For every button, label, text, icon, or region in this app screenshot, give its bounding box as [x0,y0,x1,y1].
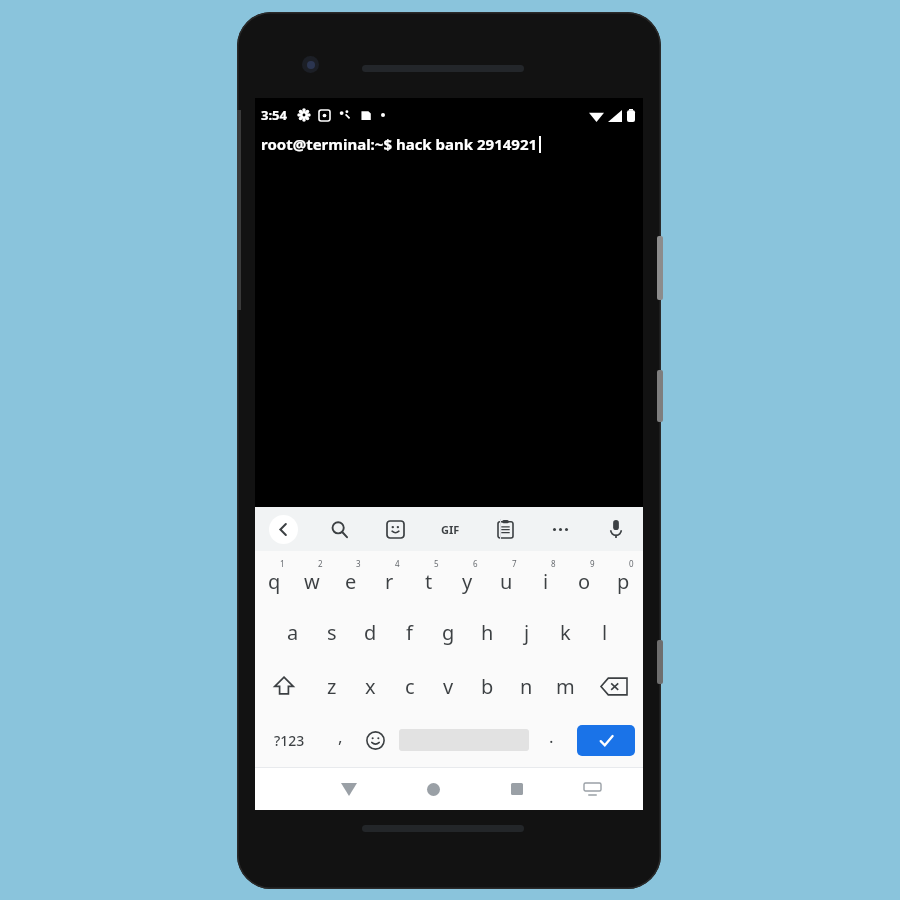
button[interactable]: 7 [487,551,526,605]
staticText: t [425,568,433,595]
staticText: 8 [551,558,556,569]
staticText: w [304,568,320,595]
button[interactable]: More options [533,507,588,551]
staticText: u [500,568,513,595]
button[interactable]: 5 [409,551,448,605]
staticText: h [481,619,494,646]
staticText: 6 [473,558,478,569]
staticText: , [338,725,343,748]
button[interactable]: h [468,605,507,659]
staticText: 0 [629,558,634,569]
button[interactable]: v [429,659,468,713]
staticText: ?123 [274,731,305,750]
button[interactable]: b [468,659,507,713]
staticText: b [481,673,494,700]
staticText: x [365,673,376,700]
button[interactable]: k [546,605,585,659]
button[interactable]: x [351,659,390,713]
staticText: 4 [395,558,400,569]
staticText: k [560,619,571,646]
button[interactable]: n [507,659,546,713]
staticText: 7 [512,558,517,569]
button[interactable]: Voice input [588,507,643,551]
button[interactable]: 4 [370,551,409,605]
staticText: j [524,619,530,646]
button[interactable]: d [351,605,390,659]
staticText: a [287,619,299,646]
staticText: c [405,673,415,700]
staticText: l [602,619,608,646]
button[interactable]: . [534,713,569,767]
button[interactable]: 1 [255,551,293,605]
staticText: m [556,673,575,700]
button[interactable]: Back [255,507,311,551]
button[interactable]: j [507,605,546,659]
button[interactable]: c [390,659,429,713]
button[interactable]: Enter [569,713,643,767]
button[interactable]: Emoji [358,713,393,767]
staticText: s [327,619,337,646]
button[interactable]: a [273,605,312,659]
button[interactable]: Back [307,768,391,810]
staticText: d [364,619,377,646]
button[interactable]: Backspace [585,659,643,713]
button[interactable]: Stickers [367,507,423,551]
button[interactable]: Search [311,507,367,551]
staticText: 3 [356,558,361,569]
staticText: z [327,673,337,700]
button[interactable]: f [390,605,429,659]
staticText: f [406,619,413,646]
button[interactable] [393,713,534,767]
button[interactable]: s [312,605,351,659]
button[interactable]: ?123 [255,713,323,767]
button[interactable]: l [585,605,624,659]
button[interactable]: Home [391,768,475,810]
staticText: g [442,619,455,646]
staticText: . [549,725,554,748]
button[interactable]: 2 [293,551,331,605]
staticText: 9 [590,558,595,569]
button[interactable]: Shift [255,659,312,713]
button[interactable]: Clipboard [478,507,533,551]
staticText: i [543,568,549,595]
staticText: o [578,568,591,595]
staticText: GIF [441,522,460,537]
staticText: e [345,568,357,595]
button[interactable]: z [312,659,351,713]
staticText: p [617,568,630,595]
button[interactable]: 8 [526,551,565,605]
staticText: 3:54 [261,106,287,124]
button[interactable]: 0 [604,551,643,605]
staticText: 1 [280,558,285,569]
staticText: 5 [434,558,439,569]
button[interactable]: m [546,659,585,713]
staticText: root@terminal:~$ hack bank 2914921 [261,134,538,154]
staticText: q [268,568,281,595]
button[interactable]: 9 [565,551,604,605]
staticText: 2 [318,558,323,569]
button[interactable]: g [429,605,468,659]
button[interactable]: 3 [331,551,370,605]
staticText: n [520,673,533,700]
button[interactable]: , [323,713,358,767]
staticText: y [462,568,473,595]
button[interactable]: 6 [448,551,487,605]
button[interactable]: Switch keyboard [559,768,626,810]
staticText: r [385,568,394,595]
button[interactable]: Recents [475,768,559,810]
staticText: v [443,673,454,700]
button[interactable]: GIF [423,507,478,551]
